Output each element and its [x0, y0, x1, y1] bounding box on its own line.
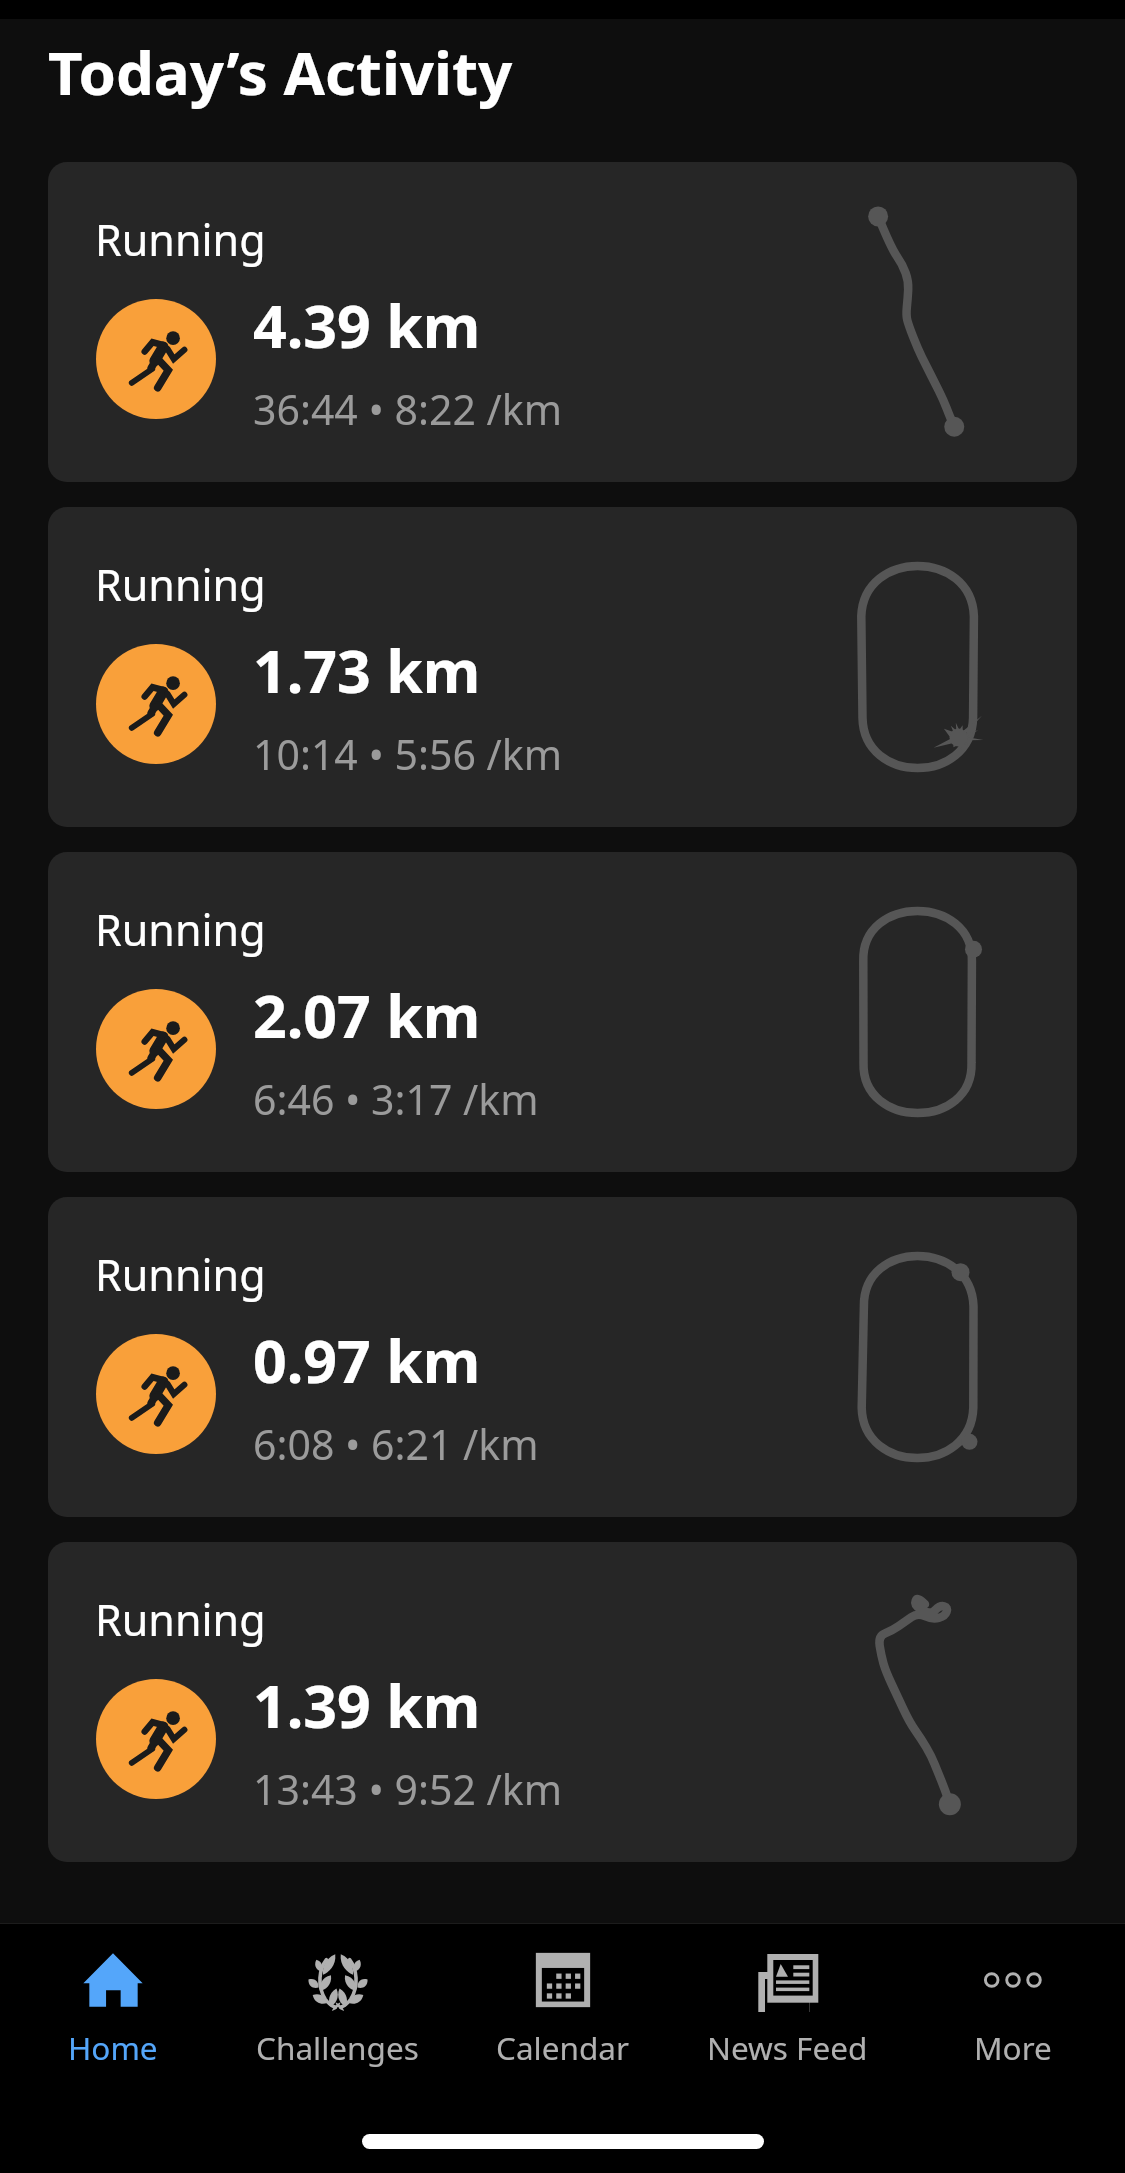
staticText: Running: [95, 900, 266, 959]
button[interactable]: Running: [48, 1542, 1077, 1862]
staticText: 36:44 • 8:22 /km: [253, 381, 563, 437]
staticText: Challenges: [256, 2026, 419, 2069]
staticText: 2.07 km: [253, 975, 481, 1055]
button[interactable]: Calendar: [450, 1923, 675, 2083]
staticText: 13:43 • 9:52 /km: [253, 1761, 563, 1817]
button[interactable]: Running: [48, 1197, 1077, 1517]
staticText: Running: [95, 210, 266, 269]
staticText: 6:46 • 3:17 /km: [253, 1071, 539, 1127]
staticText: 0.97 km: [253, 1320, 481, 1400]
staticText: More: [974, 2026, 1052, 2069]
staticText: 1.73 km: [253, 630, 481, 710]
button[interactable]: Home: [0, 1923, 225, 2083]
button[interactable]: Running: [48, 507, 1077, 827]
button[interactable]: Running: [48, 852, 1077, 1172]
staticText: 1.39 km: [253, 1665, 481, 1745]
button[interactable]: More: [900, 1923, 1125, 2083]
staticText: Home: [68, 2026, 158, 2069]
staticText: Running: [95, 555, 266, 614]
staticText: Calendar: [496, 2026, 629, 2069]
staticText: Running: [95, 1590, 266, 1649]
button[interactable]: News Feed: [675, 1923, 900, 2083]
staticText: 4.39 km: [253, 285, 481, 365]
staticText: 6:08 • 6:21 /km: [253, 1416, 539, 1472]
button[interactable]: Running: [48, 162, 1077, 482]
staticText: 10:14 • 5:56 /km: [253, 726, 563, 782]
button[interactable]: Challenges: [225, 1923, 450, 2083]
staticText: Running: [95, 1245, 266, 1304]
staticText: Today’s Activity: [48, 31, 513, 113]
staticText: News Feed: [707, 2026, 868, 2069]
